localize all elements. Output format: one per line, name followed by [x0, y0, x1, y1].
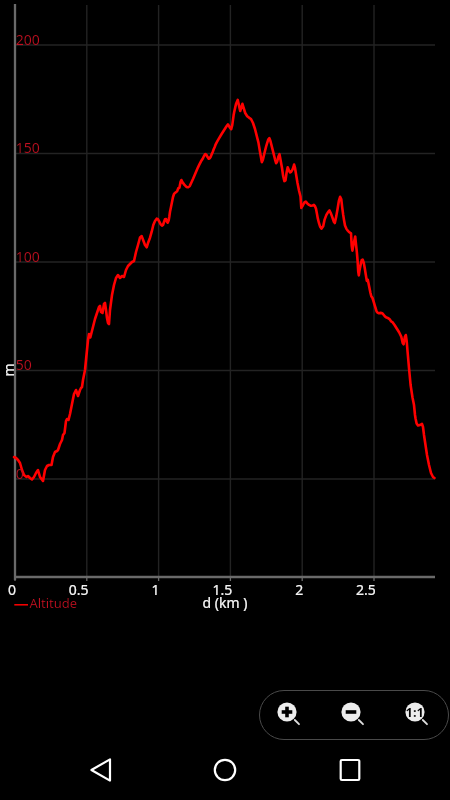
button[interactable]: Zoom in [265, 690, 309, 734]
button[interactable]: Zoom out [329, 690, 373, 734]
button[interactable]: Recent apps [322, 742, 378, 798]
button[interactable]: Home [197, 742, 253, 798]
button[interactable]: Back [73, 742, 129, 798]
button[interactable]: Reset zoom to 1:1 [393, 690, 437, 734]
